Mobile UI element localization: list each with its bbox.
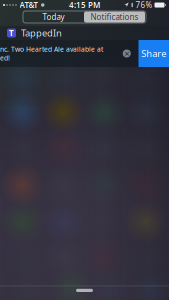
button[interactable]: Clear notification [115, 40, 138, 67]
staticText: Share [141, 47, 166, 60]
button[interactable]: Today [23, 11, 83, 23]
staticText: nc. Two Hearted Ale available at [0, 45, 103, 53]
staticText: × [124, 47, 129, 60]
button[interactable]: Share [138, 40, 169, 67]
button[interactable]: Notifications [83, 11, 145, 23]
staticText: 4:15 PM [69, 0, 100, 10]
staticText: Today [42, 12, 64, 22]
staticText: ed! [0, 53, 10, 62]
staticText: AT&T [19, 0, 38, 10]
staticText: 76% [135, 0, 152, 10]
staticText: T [9, 28, 14, 38]
staticText: Notifications [90, 12, 138, 22]
staticText: TappedIn [21, 27, 62, 39]
